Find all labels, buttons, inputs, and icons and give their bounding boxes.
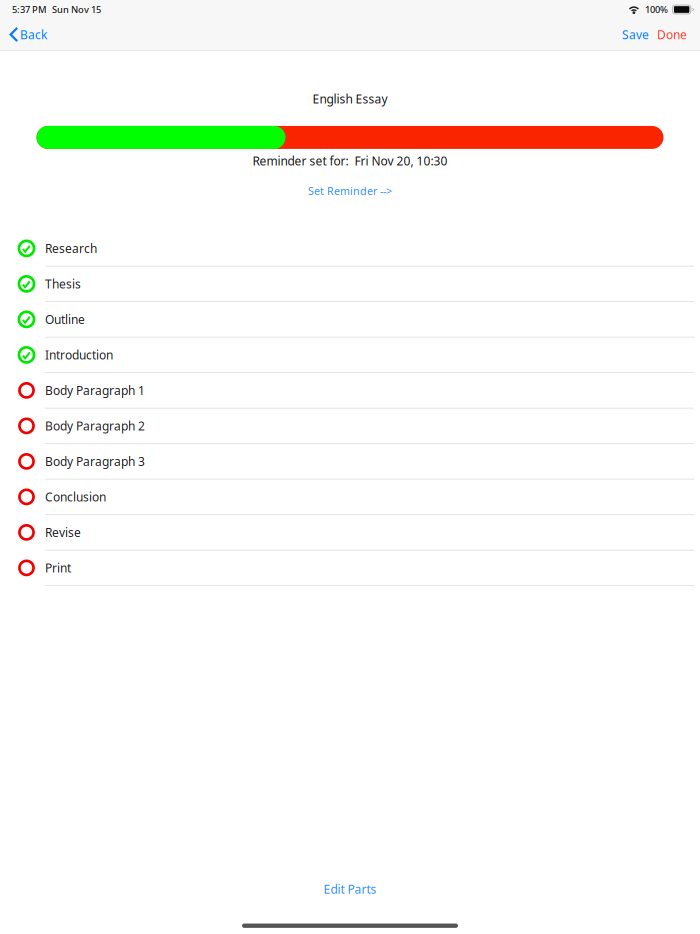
staticText: Save: [622, 26, 649, 42]
button[interactable]: Edit Parts: [311, 875, 388, 903]
button[interactable]: Revise: [0, 515, 700, 550]
staticText: Revise: [45, 524, 81, 540]
button[interactable]: Introduction: [0, 337, 700, 373]
button[interactable]: Mark Introduction incomplete: [17, 345, 36, 364]
button[interactable]: Mark Revise complete: [17, 523, 36, 542]
button[interactable]: Set Reminder -->: [300, 179, 400, 203]
staticText: Body Paragraph 3: [45, 453, 145, 469]
staticText: Set Reminder -->: [308, 184, 392, 198]
staticText: Body Paragraph 2: [45, 418, 145, 434]
staticText: Thesis: [45, 276, 81, 292]
button[interactable]: Mark Thesis incomplete: [17, 274, 36, 293]
staticText: 5:37 PM: [12, 3, 47, 16]
button[interactable]: Outline: [0, 302, 700, 337]
staticText: Done: [657, 26, 687, 42]
button[interactable]: Thesis: [0, 266, 700, 302]
button[interactable]: Print: [0, 550, 700, 586]
button[interactable]: Back: [0, 19, 57, 50]
staticText: 100%: [645, 3, 668, 16]
staticText: Reminder set for: Fri Nov 20, 10:30: [252, 153, 447, 169]
staticText: Introduction: [45, 347, 113, 363]
button[interactable]: Mark Conclusion complete: [17, 487, 36, 506]
staticText: Research: [45, 240, 97, 256]
staticText: Outline: [45, 311, 85, 327]
button[interactable]: Mark Body Paragraph 2 complete: [17, 416, 36, 435]
button[interactable]: Save: [617, 19, 652, 50]
button[interactable]: Body Paragraph 2: [0, 408, 700, 444]
staticText: Back: [20, 26, 47, 42]
button[interactable]: Conclusion: [0, 479, 700, 515]
button[interactable]: Body Paragraph 1: [0, 373, 700, 408]
button[interactable]: Research: [0, 231, 700, 266]
button[interactable]: Mark Research incomplete: [17, 239, 36, 258]
button[interactable]: Mark Body Paragraph 1 complete: [17, 381, 36, 400]
button[interactable]: Mark Body Paragraph 3 complete: [17, 452, 36, 471]
button[interactable]: Mark Outline incomplete: [17, 310, 36, 329]
staticText: Edit Parts: [323, 881, 376, 897]
button[interactable]: Mark Print complete: [17, 558, 36, 577]
staticText: Print: [45, 560, 71, 576]
staticText: English Essay: [312, 91, 387, 107]
staticText: Sun Nov 15: [52, 3, 101, 16]
staticText: Conclusion: [45, 489, 106, 505]
button[interactable]: Body Paragraph 3: [0, 444, 700, 479]
button[interactable]: Done: [652, 19, 700, 50]
staticText: Body Paragraph 1: [45, 382, 145, 398]
